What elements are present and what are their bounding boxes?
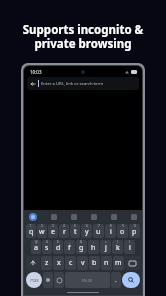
button[interactable]: Shift bbox=[26, 256, 40, 270]
staticText: ?123 bbox=[30, 278, 39, 283]
button[interactable]: Back bbox=[30, 81, 36, 87]
staticText: j bbox=[105, 243, 107, 253]
staticText: i bbox=[110, 227, 112, 237]
button[interactable]: 3 bbox=[48, 224, 58, 238]
staticText: 9 bbox=[122, 224, 124, 228]
staticText: 3 bbox=[52, 224, 54, 228]
staticText: l bbox=[129, 243, 131, 253]
staticText: f bbox=[68, 243, 71, 253]
staticText: 2 bbox=[41, 224, 43, 228]
staticText: p bbox=[132, 227, 137, 237]
staticText: 0 bbox=[134, 224, 136, 228]
button[interactable]: c bbox=[65, 256, 76, 270]
button[interactable]: m bbox=[113, 256, 124, 270]
button[interactable]: Keyboard tool 1 bbox=[51, 214, 57, 220]
staticText: d bbox=[56, 243, 61, 253]
button[interactable]: b bbox=[89, 256, 100, 270]
staticText: s bbox=[45, 243, 49, 253]
button[interactable]: . bbox=[111, 272, 121, 288]
staticText: y bbox=[85, 227, 89, 237]
staticText: ) bbox=[129, 240, 130, 244]
staticText: # bbox=[46, 240, 48, 244]
staticText: c bbox=[69, 258, 73, 268]
staticText: EN-US bbox=[82, 278, 93, 283]
button[interactable]: ( bbox=[112, 240, 123, 254]
staticText: a bbox=[34, 243, 38, 253]
staticText: q bbox=[29, 227, 34, 237]
button[interactable]: Space bbox=[65, 272, 110, 288]
staticText: - bbox=[93, 240, 94, 244]
staticText: Supports incognito & private browsing bbox=[0, 22, 166, 51]
staticText: 5 bbox=[74, 224, 76, 228]
button[interactable]: 8 bbox=[105, 224, 116, 238]
button[interactable]: $ bbox=[53, 240, 63, 254]
staticText: & bbox=[80, 240, 83, 244]
button[interactable]: Keyboard tool 3 bbox=[91, 214, 97, 220]
button[interactable]: ) bbox=[124, 240, 135, 254]
button[interactable]: 0 bbox=[129, 224, 140, 238]
button[interactable]: Language bbox=[54, 272, 64, 288]
staticText: e bbox=[51, 227, 55, 237]
staticText: h bbox=[91, 243, 96, 253]
staticText: 1 bbox=[30, 224, 32, 228]
button[interactable]: 4 bbox=[59, 224, 69, 238]
button[interactable]: - bbox=[88, 240, 99, 254]
staticText: z bbox=[45, 258, 49, 268]
button[interactable]: v bbox=[77, 256, 88, 270]
staticText: k bbox=[116, 243, 120, 253]
staticText: m bbox=[115, 258, 122, 268]
button[interactable]: n bbox=[101, 256, 112, 270]
button[interactable]: Search bbox=[122, 272, 140, 288]
button[interactable]: Backspace bbox=[125, 256, 140, 270]
button[interactable]: 7 bbox=[93, 224, 104, 238]
button[interactable]: Keyboard tool 2 bbox=[71, 214, 77, 220]
staticText: x bbox=[57, 258, 61, 268]
staticText: _ bbox=[69, 240, 71, 244]
staticText: r bbox=[63, 227, 66, 237]
button[interactable]: _ bbox=[64, 240, 75, 254]
button[interactable]: Back bbox=[27, 77, 139, 90]
button[interactable]: & bbox=[76, 240, 87, 254]
button[interactable]: @ bbox=[31, 240, 41, 254]
staticText: @ bbox=[35, 240, 38, 244]
staticText: 4 bbox=[63, 224, 65, 228]
staticText: v bbox=[81, 258, 85, 268]
staticText: 7 bbox=[98, 224, 100, 228]
button[interactable]: 1 bbox=[26, 224, 36, 238]
staticText: . bbox=[115, 276, 117, 284]
button[interactable]: 6 bbox=[81, 224, 92, 238]
staticText: + bbox=[105, 240, 107, 244]
button[interactable]: z bbox=[41, 256, 52, 270]
button[interactable]: Keyboard tool 4 bbox=[111, 214, 117, 220]
staticText: u bbox=[96, 227, 101, 237]
button[interactable]: Emoji bbox=[43, 272, 53, 288]
staticText: 8 bbox=[110, 224, 112, 228]
button[interactable]: ?123 bbox=[26, 272, 42, 288]
button[interactable]: + bbox=[100, 240, 111, 254]
button[interactable]: 5 bbox=[70, 224, 80, 238]
staticText: $ bbox=[57, 240, 59, 244]
staticText: w bbox=[39, 227, 45, 237]
button[interactable]: 9 bbox=[117, 224, 128, 238]
staticText: t bbox=[74, 227, 77, 237]
staticText: ( bbox=[117, 240, 118, 244]
staticText: n bbox=[104, 258, 109, 268]
button[interactable]: # bbox=[42, 240, 52, 254]
button[interactable]: Google bbox=[29, 213, 37, 221]
staticText: b bbox=[92, 258, 97, 268]
button[interactable]: Keyboard tool 5 bbox=[131, 214, 137, 220]
staticText: 6 bbox=[86, 224, 88, 228]
button[interactable]: x bbox=[53, 256, 64, 270]
staticText: g bbox=[79, 243, 84, 253]
staticText: 10:03 bbox=[30, 69, 42, 75]
staticText: o bbox=[120, 227, 125, 237]
staticText: Enter a URL, link or search term bbox=[41, 81, 104, 87]
button[interactable]: 2 bbox=[37, 224, 47, 238]
